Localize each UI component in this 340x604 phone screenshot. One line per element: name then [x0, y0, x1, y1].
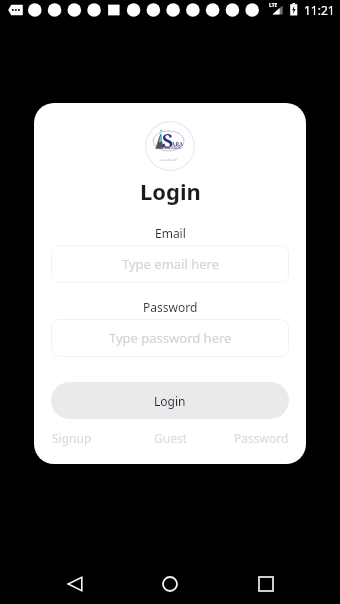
button[interactable]: Home [139, 562, 201, 604]
staticText: Signup [52, 430, 92, 446]
staticText: Password [143, 299, 198, 315]
staticText: Guest [154, 430, 188, 446]
button[interactable]: Guest [137, 430, 205, 446]
staticText: Password [234, 430, 289, 446]
staticText: Login [140, 176, 201, 206]
staticText: Type password here [109, 329, 232, 347]
button[interactable]: Recent apps [235, 562, 297, 604]
button[interactable]: Signup [38, 430, 106, 446]
button[interactable]: Login [51, 382, 289, 419]
staticText: 11:21 [304, 2, 335, 18]
button[interactable]: Type password here [51, 319, 289, 357]
staticText: Type email here [122, 255, 219, 273]
staticText: ARA [171, 140, 184, 147]
staticText: SEA FOOD [164, 145, 182, 150]
staticText: Login [154, 393, 186, 409]
staticText: LTE [269, 2, 278, 9]
button[interactable]: Type email here [51, 245, 289, 283]
button[interactable]: Back [44, 562, 106, 604]
staticText: S [162, 128, 174, 154]
staticText: Email [155, 225, 186, 241]
button[interactable]: Password [227, 430, 295, 446]
